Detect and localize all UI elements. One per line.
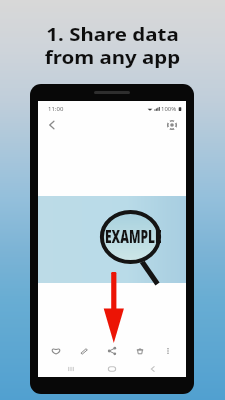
button[interactable]: Home	[105, 362, 119, 376]
button[interactable]: Back	[146, 362, 160, 376]
button[interactable]: Recents	[64, 362, 78, 376]
staticText: EXAMPLE	[105, 225, 162, 248]
button[interactable]: More options	[161, 344, 175, 358]
button[interactable]: Edit	[77, 344, 91, 358]
button[interactable]: Share	[105, 344, 119, 358]
button[interactable]: Favorite	[49, 344, 63, 358]
button[interactable]: Settings	[164, 117, 180, 133]
staticText: 100%	[161, 105, 177, 113]
button[interactable]: Delete	[133, 344, 147, 358]
staticText: 11:00	[48, 105, 64, 113]
staticText: 1. Share data from any app	[0, 22, 225, 69]
button[interactable]: Back	[44, 117, 60, 133]
